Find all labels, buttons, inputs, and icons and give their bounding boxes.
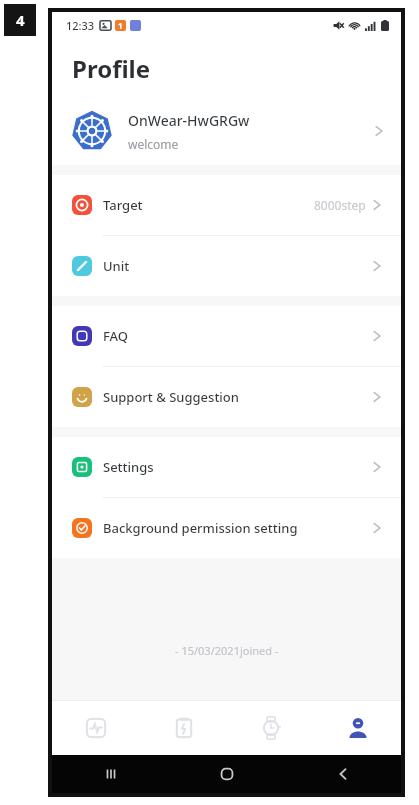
staticText: Support & Suggestion (103, 388, 373, 406)
button[interactable]: FAQ (52, 306, 401, 366)
staticText: 8000step (314, 197, 366, 213)
staticText: Background permission setting (103, 519, 373, 537)
button[interactable]: Target (52, 175, 401, 235)
button[interactable]: Support & Suggestion (52, 367, 401, 427)
staticText: Unit (103, 257, 373, 275)
staticText: FAQ (103, 327, 373, 345)
button[interactable]: OnWear-HwGRGw (52, 97, 401, 165)
staticText: 4 (16, 10, 25, 30)
button[interactable]: Records (140, 701, 227, 755)
button[interactable]: Unit (52, 236, 401, 296)
staticText: 1 (118, 20, 123, 31)
button[interactable]: Settings (52, 437, 401, 497)
staticText: Target (103, 196, 314, 214)
button[interactable]: Back (285, 755, 401, 793)
button[interactable]: Background permission setting (52, 498, 401, 558)
button[interactable]: Activity (52, 701, 140, 755)
button[interactable]: Home (169, 755, 285, 793)
button[interactable]: Recents (52, 755, 169, 793)
staticText: Profile (72, 52, 151, 85)
staticText: 12:33 (66, 18, 95, 33)
staticText: Settings (103, 458, 373, 476)
staticText: OnWear-HwGRGw (128, 111, 250, 130)
staticText: - 15/03/2021joined - (175, 643, 279, 658)
button[interactable]: Device (227, 701, 314, 755)
button[interactable]: Profile (314, 701, 401, 755)
staticText: welcome (128, 136, 179, 152)
